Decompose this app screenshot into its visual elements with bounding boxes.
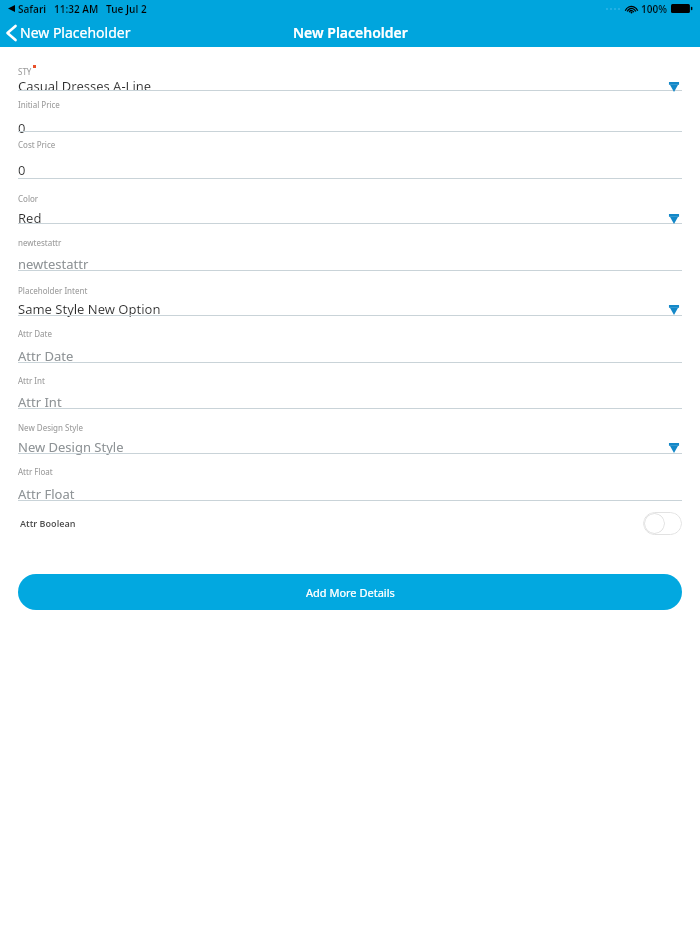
button[interactable] (0, 280, 700, 315)
staticText: 100% (641, 2, 667, 16)
staticText: New Design Style (18, 438, 124, 456)
staticText: Red (18, 209, 42, 227)
staticText: Tue Jul 2 (106, 2, 147, 16)
staticText: Attr Boolean (20, 517, 76, 529)
button[interactable] (0, 461, 700, 500)
staticText: New Placeholder (20, 23, 131, 42)
staticText: Add More Details (306, 585, 395, 600)
button[interactable]: New Placeholder (7, 23, 131, 42)
staticText: Attr Int (18, 393, 62, 411)
staticText: Initial Price (18, 99, 60, 110)
other: Attr Boolean toggle (643, 512, 682, 535)
staticText: 0 (18, 119, 26, 137)
staticText: Color (18, 193, 39, 204)
staticText: Attr Date (18, 328, 52, 339)
staticText: 0 (18, 161, 26, 179)
button[interactable] (0, 188, 700, 223)
staticText: New Design Style (18, 422, 83, 433)
button[interactable] (0, 370, 700, 408)
button[interactable] (0, 417, 700, 453)
staticText: Safari (18, 2, 47, 16)
other: Open dropdown (668, 82, 680, 92)
other: Open dropdown (668, 443, 680, 453)
button[interactable] (0, 323, 700, 362)
staticText: Attr Int (18, 375, 45, 386)
button[interactable]: Attr Boolean (0, 505, 700, 541)
other: Open dropdown (668, 214, 680, 224)
staticText: Casual Dresses A-Line (18, 77, 152, 95)
button[interactable] (0, 232, 700, 270)
staticText: Attr Float (18, 485, 75, 503)
button[interactable] (0, 135, 700, 178)
staticText: newtestattr (18, 255, 89, 273)
staticText: newtestattr (18, 237, 62, 248)
staticText: 11:32 AM (54, 2, 99, 16)
staticText: Attr Date (18, 347, 74, 365)
staticText: STY (18, 66, 32, 77)
staticText: Attr Float (18, 466, 53, 477)
staticText: New Placeholder (293, 23, 408, 42)
button[interactable] (0, 94, 700, 131)
staticText: Same Style New Option (18, 300, 161, 318)
other: Open dropdown (668, 305, 680, 315)
staticText: Cost Price (18, 139, 56, 150)
button[interactable] (0, 56, 700, 90)
staticText: Placeholder Intent (18, 285, 88, 296)
button[interactable]: Add More Details (18, 574, 682, 610)
